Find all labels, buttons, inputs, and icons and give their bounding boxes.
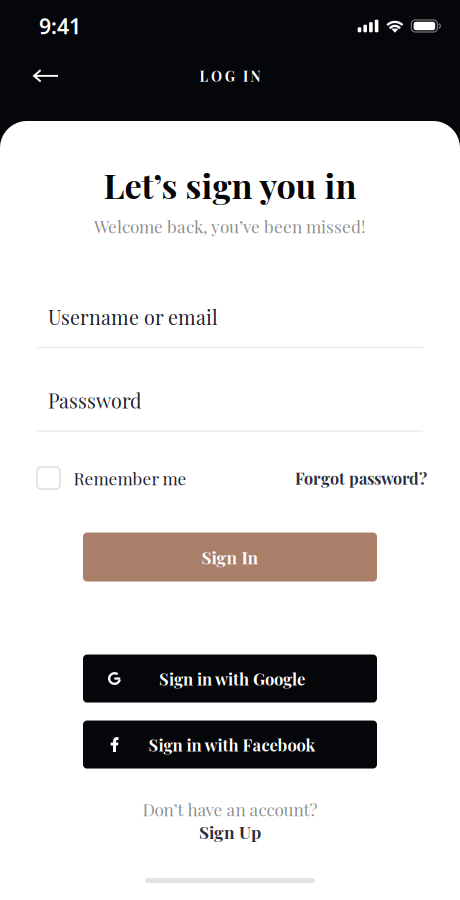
staticText: Welcome back, you’ve been missed! [94, 215, 366, 238]
staticText: Passsword [48, 387, 141, 413]
button[interactable]: Sign in with Facebook [83, 720, 377, 768]
staticText: Forgot password? [295, 467, 427, 489]
staticText: Remember me [73, 467, 186, 489]
button[interactable]: Sign in with Google [83, 654, 377, 702]
staticText: Let’s sign you in [103, 162, 356, 208]
staticText: Sign Up [199, 820, 261, 843]
staticText: LOG IN [199, 67, 260, 85]
staticText: Username or email [48, 304, 218, 330]
button[interactable]: Remember me [37, 467, 186, 489]
button[interactable]: Back [24, 56, 68, 96]
button[interactable]: Sign In [83, 532, 377, 581]
staticText: Sign in with Facebook [148, 733, 315, 755]
button[interactable]: Sign Up [199, 820, 261, 843]
button[interactable]: Forgot password? [295, 467, 427, 489]
staticText: Don’t have an account? [142, 797, 317, 820]
staticText: Sign In [201, 546, 258, 568]
staticText: 9:41 [39, 12, 81, 40]
staticText: Sign in with Google [159, 667, 305, 689]
